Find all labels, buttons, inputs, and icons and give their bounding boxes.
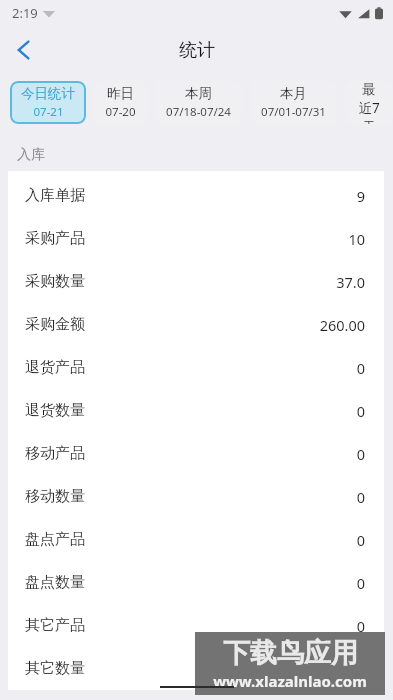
staticText: 9	[356, 186, 365, 206]
staticText: 0	[356, 358, 365, 378]
staticText: 0	[356, 573, 365, 593]
staticText: 0	[356, 401, 365, 421]
button[interactable]: 退货数量	[8, 389, 384, 432]
button[interactable]: 本周	[155, 81, 242, 124]
staticText: 移动数量	[25, 487, 85, 506]
staticText: 下载鸟应用	[223, 636, 358, 670]
staticText: 07-21	[33, 104, 64, 120]
button[interactable]: 移动产品	[8, 432, 384, 475]
staticText: 最近7天	[356, 81, 382, 124]
staticText: 统计	[179, 39, 215, 62]
staticText: 本月	[280, 85, 307, 102]
staticText: 0	[356, 444, 365, 464]
button[interactable]: 入库单据	[8, 174, 384, 217]
staticText: 入库单据	[25, 186, 85, 205]
button[interactable]: 最近7天	[345, 81, 393, 124]
staticText: 本周	[185, 85, 212, 102]
button[interactable]: 其它产品	[8, 604, 384, 647]
staticText: 0	[356, 487, 365, 507]
staticText: 盘点产品	[25, 530, 85, 549]
staticText: 退货产品	[25, 358, 85, 377]
button[interactable]: 今日统计	[10, 81, 86, 124]
staticText: 移动产品	[25, 444, 85, 463]
button[interactable]: 退货产品	[8, 346, 384, 389]
staticText: 采购金额	[25, 315, 85, 334]
staticText: 其它数量	[25, 659, 85, 678]
staticText: 今日统计	[21, 85, 75, 102]
button[interactable]: 采购金额	[8, 303, 384, 346]
staticText: 退货数量	[25, 401, 85, 420]
button[interactable]: 移动数量	[8, 475, 384, 518]
staticText: 0	[356, 530, 365, 550]
staticText: 10	[348, 229, 365, 249]
staticText: www.xlazalnlao.com	[213, 671, 367, 691]
button[interactable]: 其它数量	[8, 647, 384, 690]
staticText: 盘点数量	[25, 573, 85, 592]
staticText: 采购数量	[25, 272, 85, 291]
staticText: 采购产品	[25, 229, 85, 248]
staticText: 07/01-07/31	[261, 104, 326, 120]
staticText: 07-20	[105, 104, 136, 120]
staticText: 0	[356, 616, 365, 636]
button[interactable]: 返回	[0, 26, 48, 74]
staticText: 其它产品	[25, 616, 85, 635]
button[interactable]: 盘点产品	[8, 518, 384, 561]
staticText: 昨日	[107, 85, 134, 102]
staticText: 260.00	[319, 315, 365, 335]
button[interactable]: 昨日	[94, 81, 147, 124]
staticText: 入库	[17, 146, 45, 164]
button[interactable]: 盘点数量	[8, 561, 384, 604]
button[interactable]: 采购产品	[8, 217, 384, 260]
button[interactable]: 本月	[250, 81, 337, 124]
staticText: 37.0	[336, 272, 365, 292]
staticText: 2:19	[12, 4, 38, 22]
staticText: 07/18-07/24	[166, 104, 231, 120]
button[interactable]: 采购数量	[8, 260, 384, 303]
